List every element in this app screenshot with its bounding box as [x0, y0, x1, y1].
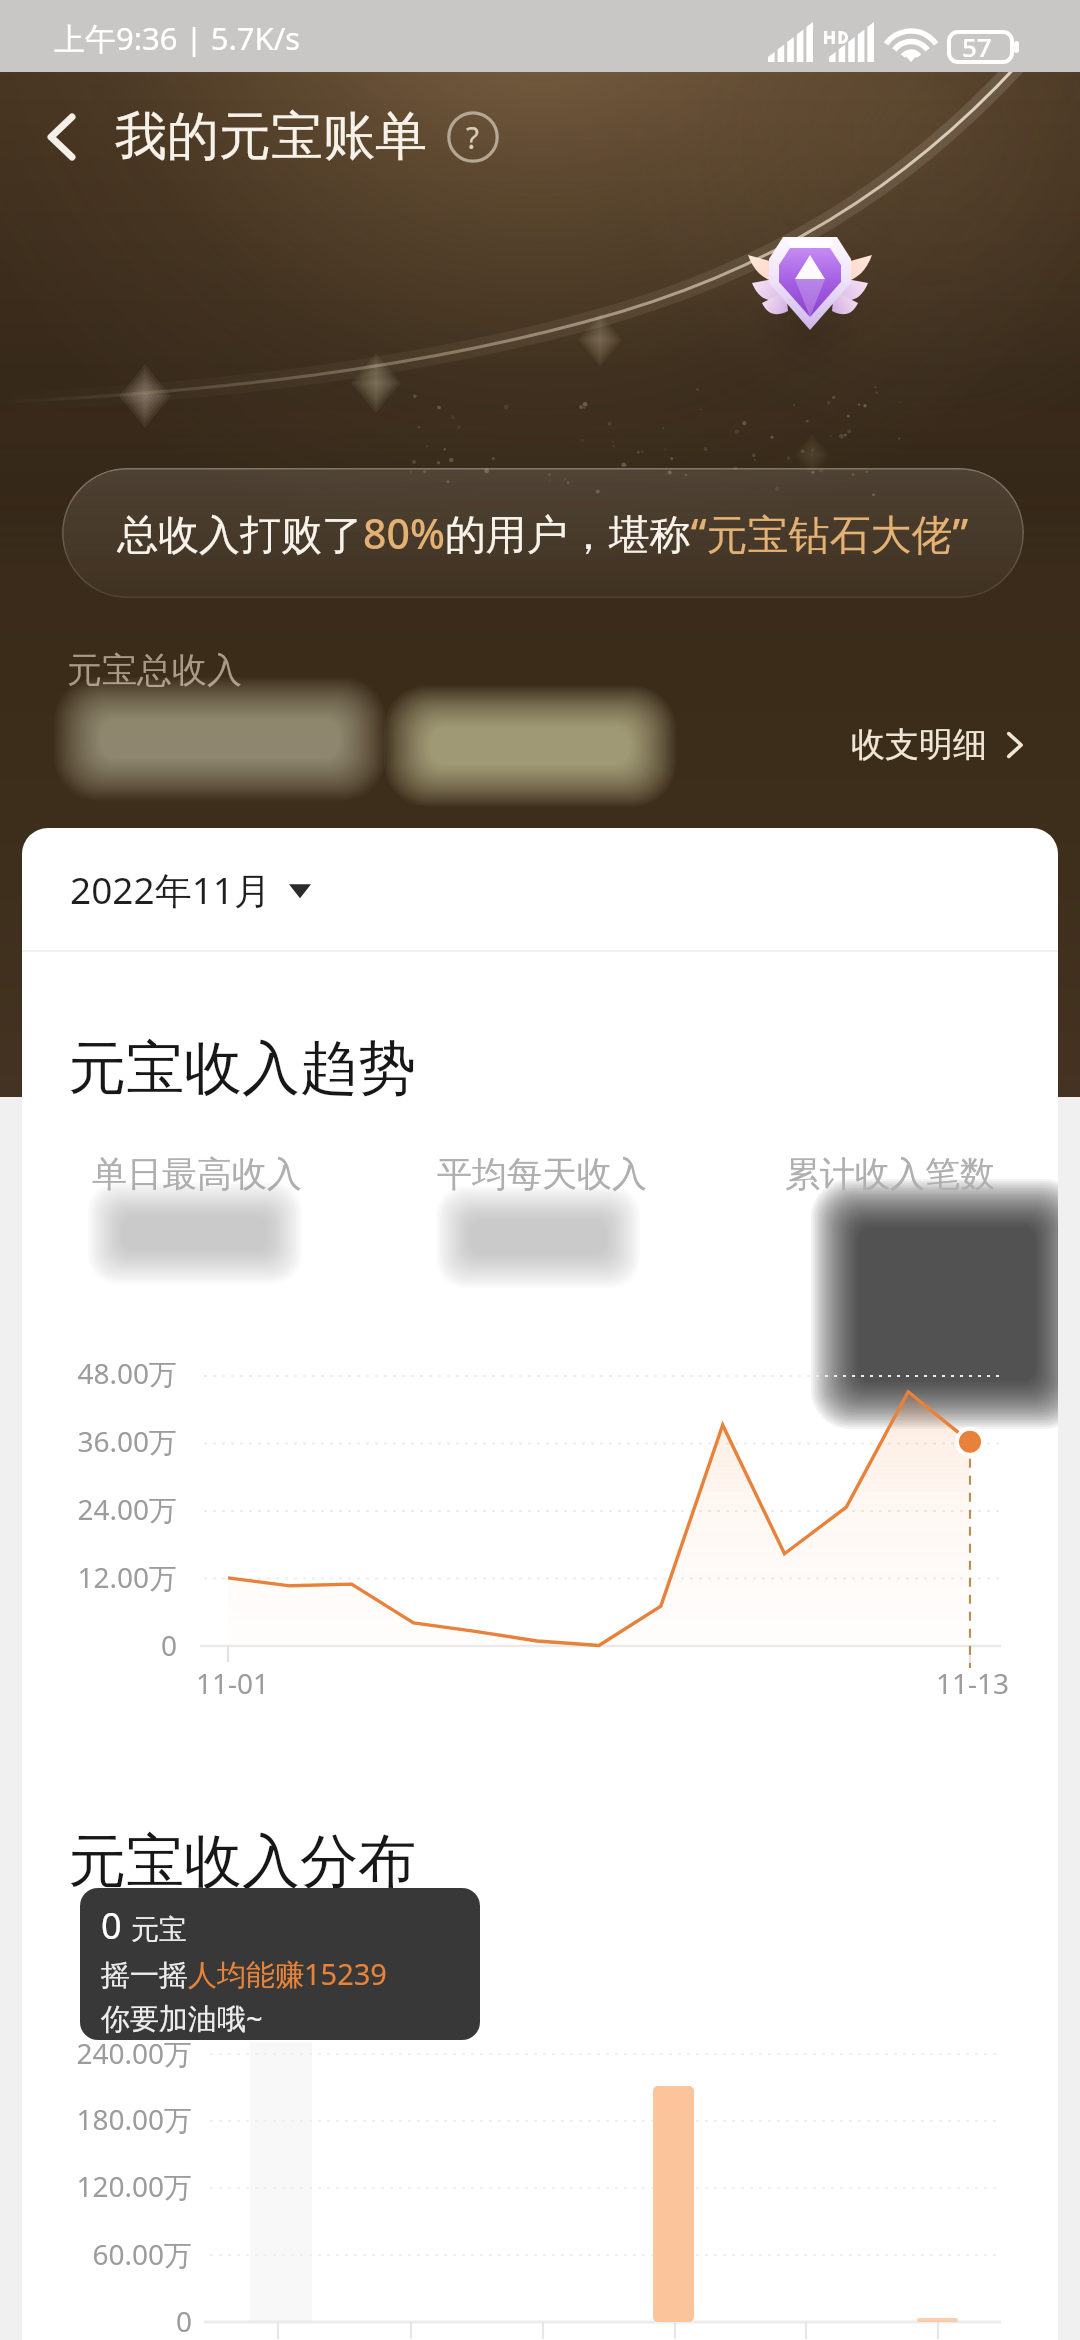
staticText: 元宝总收入: [67, 648, 242, 692]
staticText: 0: [175, 2302, 192, 2340]
staticText: 元宝收入趋势: [68, 1032, 416, 1105]
staticText: 11-13: [936, 1664, 1010, 1702]
staticText: 48.00万: [77, 1354, 177, 1392]
staticText: 11-01: [196, 1664, 270, 1702]
button[interactable]: Help: [445, 109, 501, 165]
button[interactable]: Back: [26, 101, 98, 173]
staticText: ?: [466, 117, 480, 158]
staticText: 上午9:36 | 5.7K/s: [54, 17, 301, 59]
staticText: 240.00万: [76, 2034, 192, 2072]
staticText: 总收入打败了80%的用户，堪称“元宝钻石大佬”: [117, 505, 969, 561]
staticText: 平均每天收入: [437, 1152, 647, 1196]
staticText: 你要加油哦~: [101, 1998, 263, 2038]
staticText: 12.00万: [77, 1558, 177, 1596]
staticText: 57: [962, 29, 992, 64]
staticText: 元宝收入分布: [68, 1825, 416, 1898]
staticText: 累计收入笔数: [785, 1152, 995, 1196]
staticText: 2022年11月: [70, 864, 271, 915]
staticText: 0: [160, 1626, 177, 1664]
staticText: 36.00万: [77, 1422, 177, 1460]
staticText: 180.00万: [76, 2100, 192, 2138]
staticText: 单日最高收入: [92, 1152, 302, 1196]
button[interactable]: 2022年11月: [22, 828, 335, 950]
staticText: 0 元宝: [101, 1901, 187, 1950]
staticText: 60.00万: [92, 2235, 192, 2273]
staticText: 收支明细: [851, 723, 987, 766]
button[interactable]: 总收入打败了80%的用户，堪称“元宝钻石大佬”: [62, 468, 1024, 598]
button[interactable]: 收支明细: [851, 723, 1029, 766]
staticText: 120.00万: [76, 2167, 192, 2205]
staticText: 24.00万: [77, 1490, 177, 1528]
staticText: 我的元宝账单: [115, 104, 427, 170]
button[interactable]: 0 元宝: [80, 1888, 480, 2040]
staticText: 摇一摇人均能赚15239: [101, 1954, 387, 1994]
